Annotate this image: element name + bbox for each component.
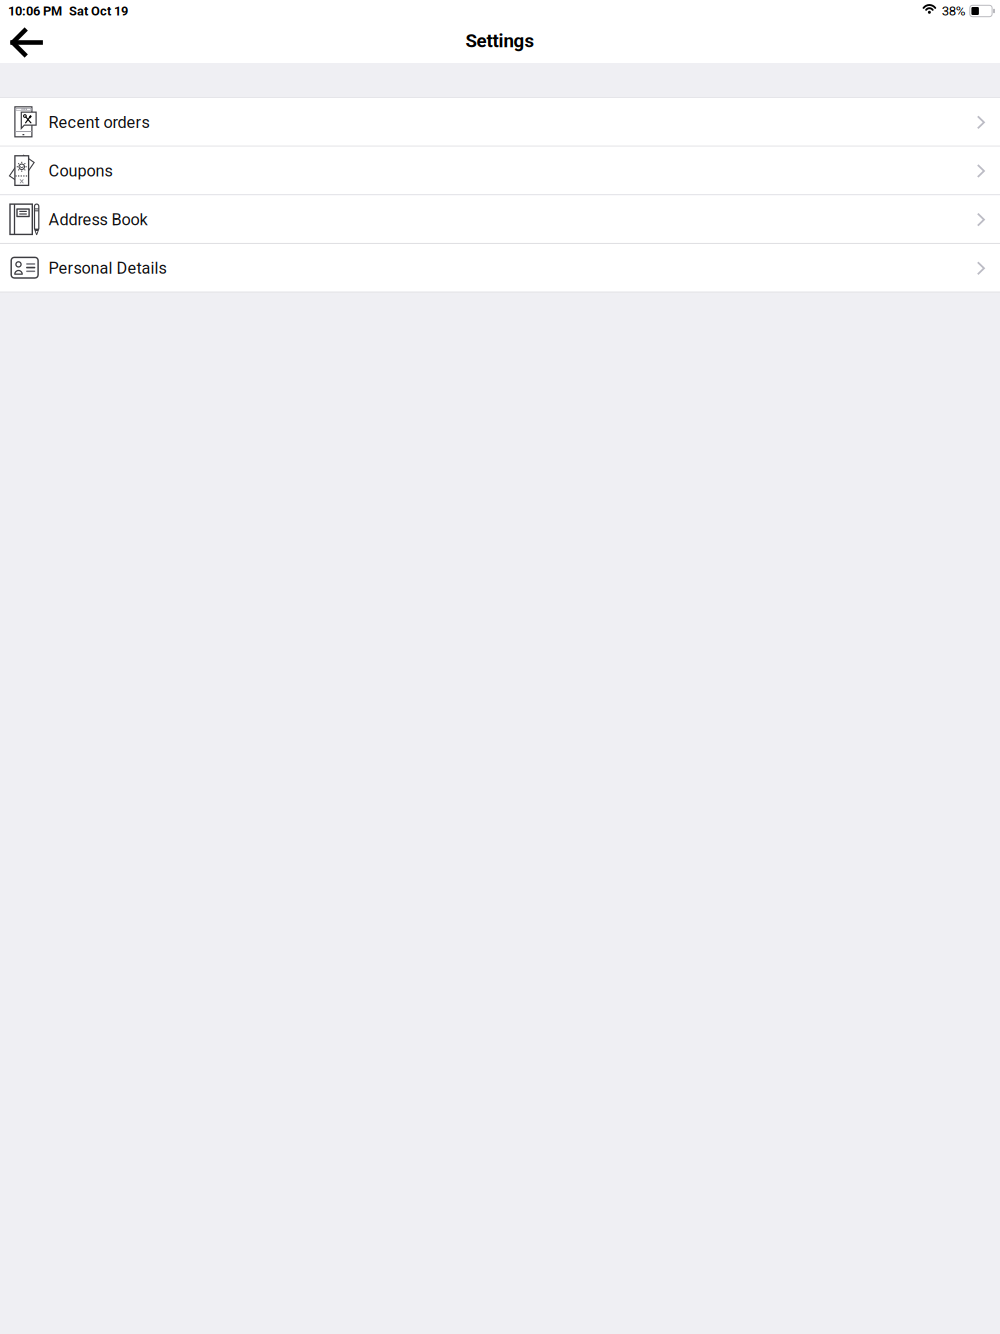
- button[interactable]: Recent orders: [0, 98, 1000, 147]
- staticText: 10:06 PM: [8, 3, 62, 18]
- button[interactable]: Back: [0, 22, 57, 63]
- staticText: 38%: [942, 3, 966, 19]
- staticText: Sat Oct 19: [69, 3, 128, 18]
- staticText: Settings: [465, 30, 534, 52]
- staticText: Address Book: [49, 210, 148, 229]
- button[interactable]: Address Book: [0, 195, 1000, 244]
- button[interactable]: Personal Details: [0, 244, 1000, 292]
- button[interactable]: Coupons: [0, 147, 1000, 195]
- staticText: Coupons: [49, 161, 113, 180]
- staticText: Recent orders: [49, 113, 150, 132]
- staticText: Personal Details: [49, 259, 167, 278]
